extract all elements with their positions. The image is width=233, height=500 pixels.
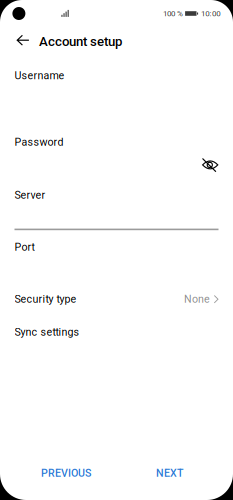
- staticText: Username: [14, 69, 64, 82]
- staticText: Account setup: [39, 34, 122, 49]
- button[interactable]: PREVIOUS: [14, 458, 118, 488]
- staticText: 100 %: [163, 9, 183, 18]
- staticText: Port: [14, 241, 34, 253]
- staticText: Sync settings: [14, 326, 79, 338]
- button[interactable]: Security type: [14, 288, 218, 310]
- button[interactable]: Show password: [198, 153, 222, 177]
- staticText: NEXT: [156, 467, 184, 479]
- staticText: Password: [14, 136, 63, 148]
- staticText: Server: [14, 189, 45, 201]
- staticText: PREVIOUS: [41, 467, 91, 479]
- button[interactable]: NEXT: [118, 458, 222, 488]
- button[interactable]: Sync settings: [14, 324, 218, 340]
- staticText: None: [184, 293, 210, 305]
- staticText: 10:00: [201, 9, 220, 18]
- staticText: Security type: [14, 293, 76, 305]
- button[interactable]: Back: [11, 28, 35, 52]
